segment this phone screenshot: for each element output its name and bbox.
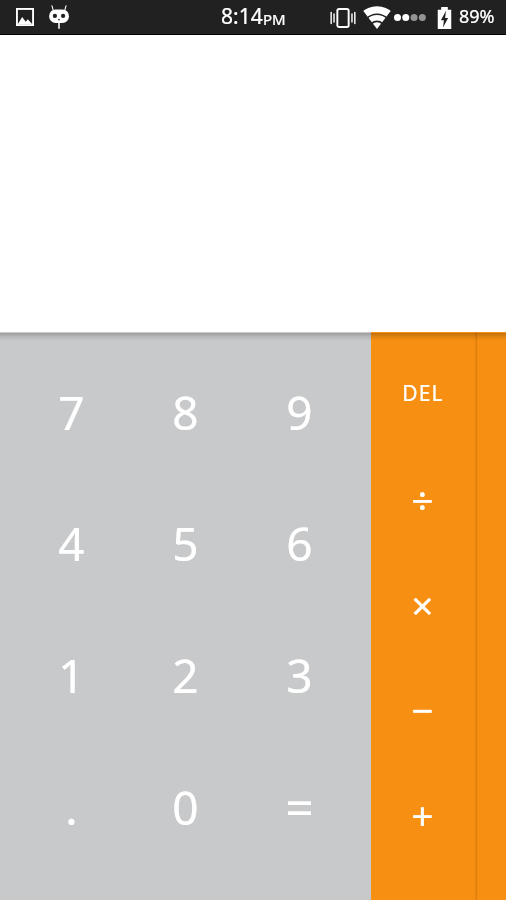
staticText: 5 <box>172 512 199 575</box>
staticText: 7 <box>58 381 85 444</box>
staticText: 89% <box>459 4 495 29</box>
button[interactable]: ÷ <box>370 446 475 552</box>
button[interactable]: 1 <box>15 609 128 741</box>
button[interactable]: − <box>370 657 475 762</box>
other: Screenshot <box>16 8 34 26</box>
button[interactable]: 6 <box>242 478 356 609</box>
staticText: PM <box>263 9 286 29</box>
staticText: 6 <box>286 512 313 575</box>
staticText: 9 <box>286 381 313 444</box>
staticText: ÷ <box>411 473 434 526</box>
staticText: 2 <box>172 644 199 707</box>
staticText: + <box>411 788 434 841</box>
button[interactable]: 4 <box>15 478 128 609</box>
other: System <box>47 5 71 29</box>
button[interactable]: 8 <box>128 347 242 478</box>
button[interactable]: 0 <box>128 741 242 873</box>
button[interactable]: 7 <box>15 347 128 478</box>
staticText: = <box>285 773 314 841</box>
button[interactable]: × <box>370 552 475 657</box>
button[interactable]: = <box>242 741 356 873</box>
other: Vibrate <box>330 8 356 28</box>
button[interactable]: 2 <box>128 609 242 741</box>
staticText: 1 <box>58 644 85 707</box>
other: Battery charging <box>437 7 452 29</box>
staticText: 4 <box>58 512 85 575</box>
button[interactable]: 3 <box>242 609 356 741</box>
other: Wi-Fi <box>365 6 389 29</box>
staticText: 3 <box>286 644 313 707</box>
staticText: 8:14 <box>221 2 263 31</box>
staticText: DEL <box>402 379 444 408</box>
button[interactable]: DEL <box>370 340 475 446</box>
staticText: − <box>411 683 434 736</box>
staticText: × <box>411 578 434 631</box>
button[interactable]: + <box>370 762 475 867</box>
button[interactable]: 5 <box>128 478 242 609</box>
button[interactable]: 9 <box>242 347 356 478</box>
staticText: 8 <box>172 381 199 444</box>
staticText: 0 <box>172 776 199 839</box>
staticText: . <box>65 776 78 839</box>
